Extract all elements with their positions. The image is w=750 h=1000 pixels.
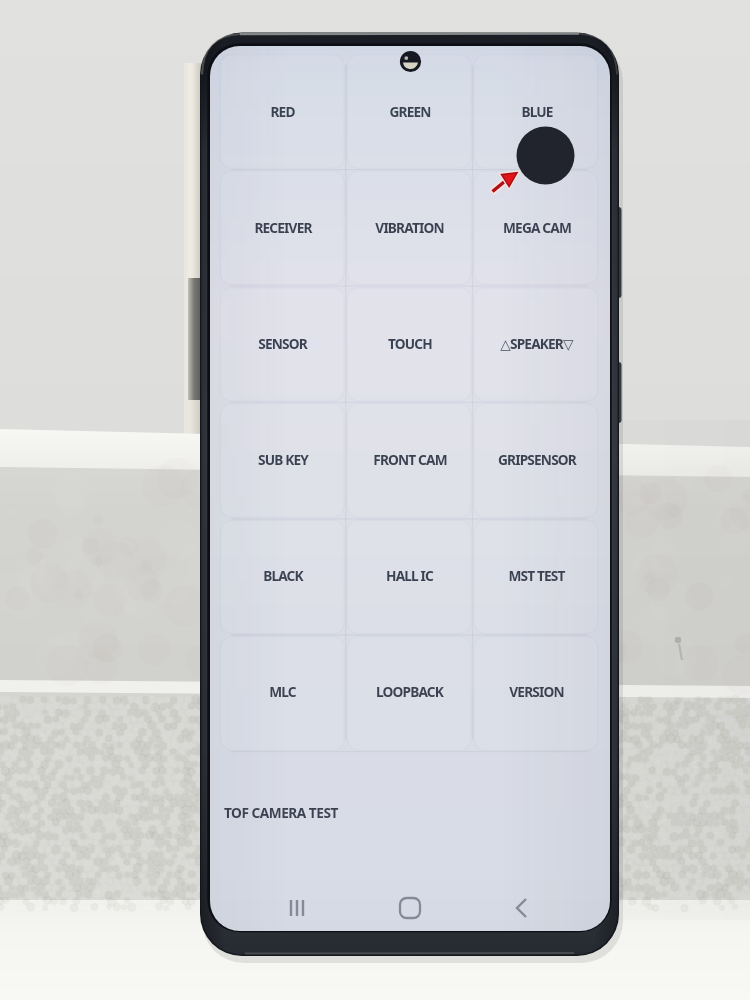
button[interactable]: LOOPBACK [346,633,473,749]
staticText: MST TEST [508,566,565,585]
staticText: BLUE [521,102,553,121]
button[interactable]: HALL IC [346,517,473,633]
staticText: TOF CAMERA TEST [224,803,338,822]
button[interactable]: VIBRATION [346,169,473,285]
staticText: GREEN [389,102,431,121]
staticText: MLC [269,682,296,701]
staticText: MEGA CAM [503,218,571,237]
button[interactable]: BLUE [473,53,600,169]
button[interactable]: VERSION [473,633,600,749]
button[interactable]: BLACK [219,517,346,633]
button[interactable]: RED [219,53,346,169]
staticText: SENSOR [258,334,307,353]
staticText: TOUCH [388,334,432,353]
staticText: HALL IC [386,566,433,585]
button[interactable]: Recent apps [271,882,323,931]
button[interactable]: SUB KEY [219,401,346,517]
staticText: GRIPSENSOR [498,450,576,469]
button[interactable]: Back [496,882,548,931]
button[interactable]: Home [384,882,436,931]
button[interactable]: MLC [219,633,346,749]
button[interactable]: TOF CAMERA TEST [219,752,599,872]
staticText: VERSION [509,682,564,701]
staticText: FRONT CAM [373,450,447,469]
button[interactable]: RECEIVER [219,169,346,285]
button[interactable]: TOUCH [346,285,473,401]
staticText: BLACK [263,566,303,585]
button[interactable]: MEGA CAM [473,169,600,285]
button[interactable]: △SPEAKER▽ [473,285,600,401]
staticText: △SPEAKER▽ [500,334,573,353]
button[interactable]: FRONT CAM [346,401,473,517]
staticText: LOOPBACK [376,682,443,701]
button[interactable]: GREEN [346,53,473,169]
button[interactable]: SENSOR [219,285,346,401]
staticText: VIBRATION [375,218,444,237]
button[interactable]: GRIPSENSOR [473,401,600,517]
staticText: RED [270,102,295,121]
staticText: SUB KEY [258,450,308,469]
button[interactable]: MST TEST [473,517,600,633]
staticText: RECEIVER [254,218,312,237]
